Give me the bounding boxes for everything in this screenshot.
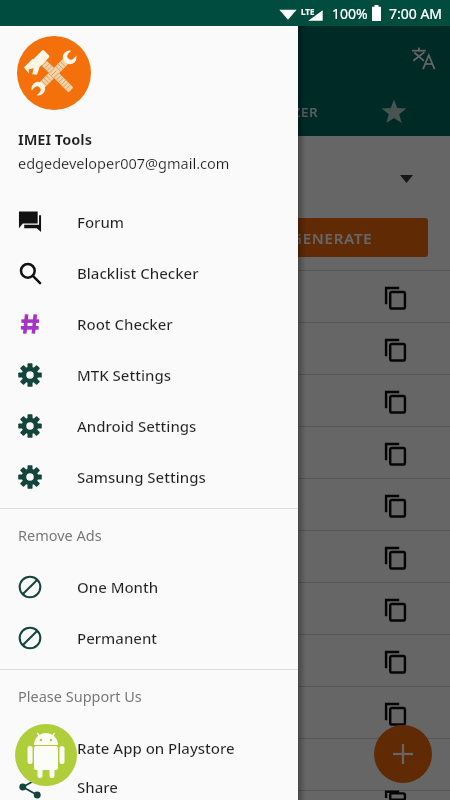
button[interactable]: GENERATE — [22, 218, 428, 257]
button[interactable]: Copy — [373, 275, 417, 319]
staticText: ANALYZER — [247, 103, 319, 121]
button[interactable]: Copy — [373, 791, 417, 800]
staticText: Android Settings — [77, 416, 197, 436]
button[interactable]: Copy — [373, 379, 417, 423]
staticText: edgedeveloper007@gmail.com — [18, 153, 230, 173]
button[interactable]: ANALYZER — [228, 88, 338, 136]
staticText: Please Support Us — [18, 686, 142, 706]
button[interactable]: Add — [374, 725, 432, 783]
button[interactable]: Samsung Settings — [0, 451, 298, 502]
button[interactable]: Copy — [0, 687, 450, 738]
button[interactable]: Translate — [406, 41, 440, 75]
button[interactable]: Copy — [373, 431, 417, 475]
button[interactable]: Permanent — [0, 612, 298, 663]
button[interactable]: MTK Settings — [0, 349, 298, 400]
button[interactable]: Copy — [0, 375, 450, 426]
staticText: IMEI Tools — [18, 129, 92, 149]
staticText: One Month — [77, 577, 159, 597]
button[interactable]: IMEI INFO — [14, 88, 124, 136]
button[interactable]: Copy — [0, 531, 450, 582]
button[interactable]: Copy — [373, 327, 417, 371]
button[interactable]: Rate App on Playstore — [0, 722, 298, 773]
button[interactable]: Copy — [373, 743, 417, 787]
button[interactable]: Android Settings — [0, 400, 298, 451]
button[interactable]: Root Checker — [0, 298, 298, 349]
button[interactable]: Share — [0, 773, 298, 800]
staticText: GENERATE — [291, 228, 373, 248]
staticText: MTK Settings — [77, 365, 171, 385]
button[interactable]: Copy — [373, 535, 417, 579]
button[interactable]: Copy — [0, 323, 450, 374]
button[interactable]: Copy — [373, 639, 417, 683]
staticText: 100% — [332, 4, 368, 23]
button[interactable]: Copy — [0, 427, 450, 478]
staticText: Forum — [77, 212, 125, 232]
staticText: Share — [77, 777, 118, 797]
staticText: Root Checker — [77, 314, 173, 334]
button[interactable]: One Month — [0, 561, 298, 612]
staticText: Rate App on Playstore — [77, 738, 235, 758]
button[interactable]: Copy — [373, 483, 417, 527]
button[interactable]: Copy — [0, 479, 450, 530]
button[interactable]: Copy — [0, 583, 450, 634]
staticText: Remove Ads — [18, 525, 102, 545]
button[interactable]: Forum — [0, 196, 298, 247]
button[interactable]: Copy — [373, 691, 417, 735]
staticText: LTE — [301, 6, 315, 17]
staticText: 7:00 AM — [389, 4, 443, 23]
staticText: Blacklist Checker — [77, 263, 199, 283]
button[interactable]: Copy — [0, 791, 450, 800]
button[interactable]: Copy — [0, 271, 450, 322]
staticText: IMEI INFO — [33, 103, 105, 121]
button[interactable]: Copy — [0, 635, 450, 686]
button[interactable]: Blacklist Checker — [0, 247, 298, 298]
button[interactable]: Copy — [0, 739, 450, 790]
button[interactable]: Favorites — [370, 88, 418, 136]
button[interactable]: Copy — [373, 587, 417, 631]
staticText: Samsung Settings — [77, 467, 206, 487]
staticText: Permanent — [77, 628, 158, 648]
